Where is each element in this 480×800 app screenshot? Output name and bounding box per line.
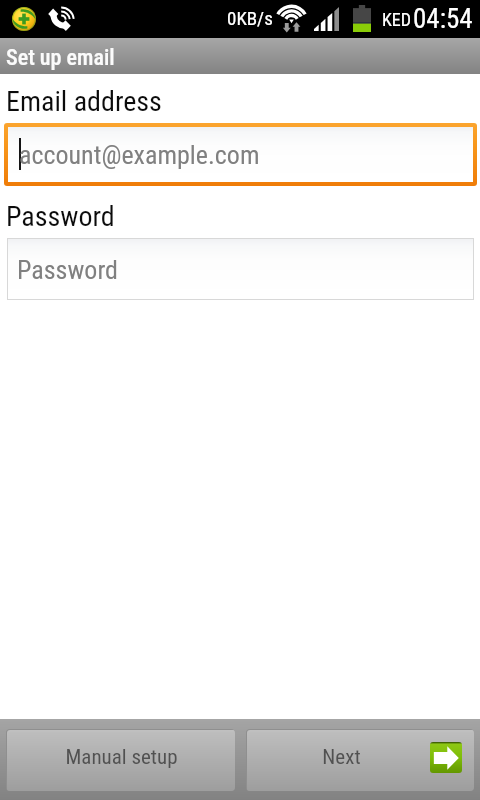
button[interactable]: Password [7, 238, 474, 300]
staticText: Set up email [6, 45, 115, 71]
staticText: Manual setup [65, 745, 178, 770]
staticText: Email address [6, 85, 162, 118]
staticText: KED [382, 9, 412, 30]
other: Next [430, 742, 462, 773]
staticText: 04:54 [413, 3, 473, 35]
button[interactable]: Next [246, 729, 474, 791]
staticText: Password [17, 255, 118, 285]
staticText: account@example.com [19, 140, 260, 170]
staticText: Password [6, 200, 115, 233]
staticText: Next [322, 745, 361, 770]
button[interactable]: account@example.com [4, 123, 477, 186]
staticText: 0KB/s [227, 7, 273, 29]
button[interactable]: Manual setup [6, 729, 235, 791]
